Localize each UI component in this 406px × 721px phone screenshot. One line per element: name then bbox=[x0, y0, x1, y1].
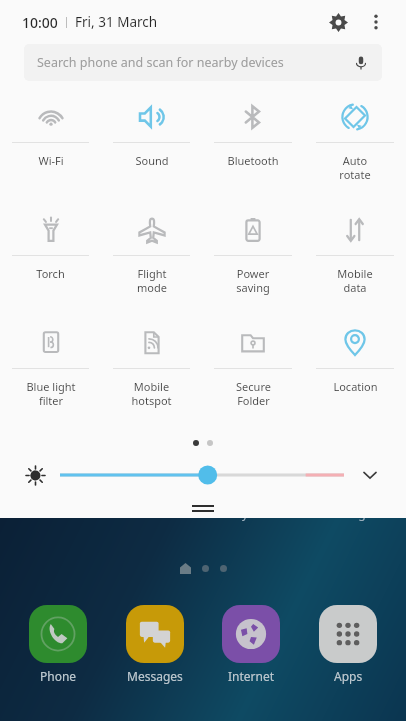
staticText: Play Store bbox=[225, 505, 281, 521]
staticText: Sound bbox=[135, 153, 169, 168]
staticText: Camera bbox=[130, 505, 174, 521]
staticText: Mobile data bbox=[337, 266, 373, 295]
button[interactable]: Collapse panel bbox=[0, 505, 406, 512]
staticText: Location bbox=[333, 379, 378, 394]
button[interactable]: Wi-Fi bbox=[0, 89, 101, 202]
button[interactable]: Mobile hotspot bbox=[101, 315, 202, 428]
button[interactable]: Messages bbox=[116, 605, 194, 684]
staticText: Auto rotate bbox=[339, 153, 371, 182]
staticText: Internet bbox=[228, 668, 275, 684]
button[interactable]: Brightness bbox=[20, 460, 50, 490]
staticText: Apps bbox=[334, 668, 363, 684]
button[interactable]: Apps bbox=[309, 605, 387, 684]
button[interactable]: More options bbox=[358, 4, 394, 40]
button[interactable]: Secure Folder bbox=[202, 315, 304, 428]
button[interactable]: Flight mode bbox=[101, 202, 202, 315]
button[interactable]: Power saving bbox=[202, 202, 304, 315]
button[interactable]: Phone bbox=[19, 605, 97, 684]
staticText: Fri, 31 March bbox=[75, 13, 158, 31]
staticText: Blue light filter bbox=[26, 379, 76, 408]
button[interactable]: Settings bbox=[318, 2, 358, 42]
button[interactable]: Auto rotate bbox=[304, 89, 406, 202]
staticText: Messages bbox=[127, 668, 183, 684]
button[interactable]: Bluetooth bbox=[202, 89, 304, 202]
staticText: Flight mode bbox=[137, 266, 167, 295]
button[interactable]: Location bbox=[304, 315, 406, 428]
staticText: Email bbox=[35, 505, 66, 521]
button[interactable]: Blue light filter bbox=[0, 315, 101, 428]
staticText: Bluetooth bbox=[227, 153, 279, 168]
button[interactable]: Search phone and scan for nearby devices bbox=[24, 44, 382, 81]
staticText: Power saving bbox=[236, 266, 270, 295]
staticText: Torch bbox=[36, 266, 65, 281]
button[interactable]: Torch bbox=[0, 202, 101, 315]
staticText: Google bbox=[335, 505, 376, 521]
staticText: 10:00 bbox=[22, 13, 58, 32]
staticText: Wi-Fi bbox=[38, 153, 64, 168]
staticText: Search phone and scan for nearby devices bbox=[37, 54, 284, 71]
button[interactable]: Sound bbox=[101, 89, 202, 202]
button[interactable]: Brightness slider bbox=[60, 460, 344, 490]
button[interactable]: Mobile data bbox=[304, 202, 406, 315]
button[interactable]: Expand brightness settings bbox=[354, 459, 386, 491]
staticText: Mobile hotspot bbox=[131, 379, 172, 408]
staticText: Phone bbox=[40, 668, 77, 684]
button[interactable]: Internet bbox=[212, 605, 290, 684]
staticText: Secure Folder bbox=[236, 379, 271, 408]
